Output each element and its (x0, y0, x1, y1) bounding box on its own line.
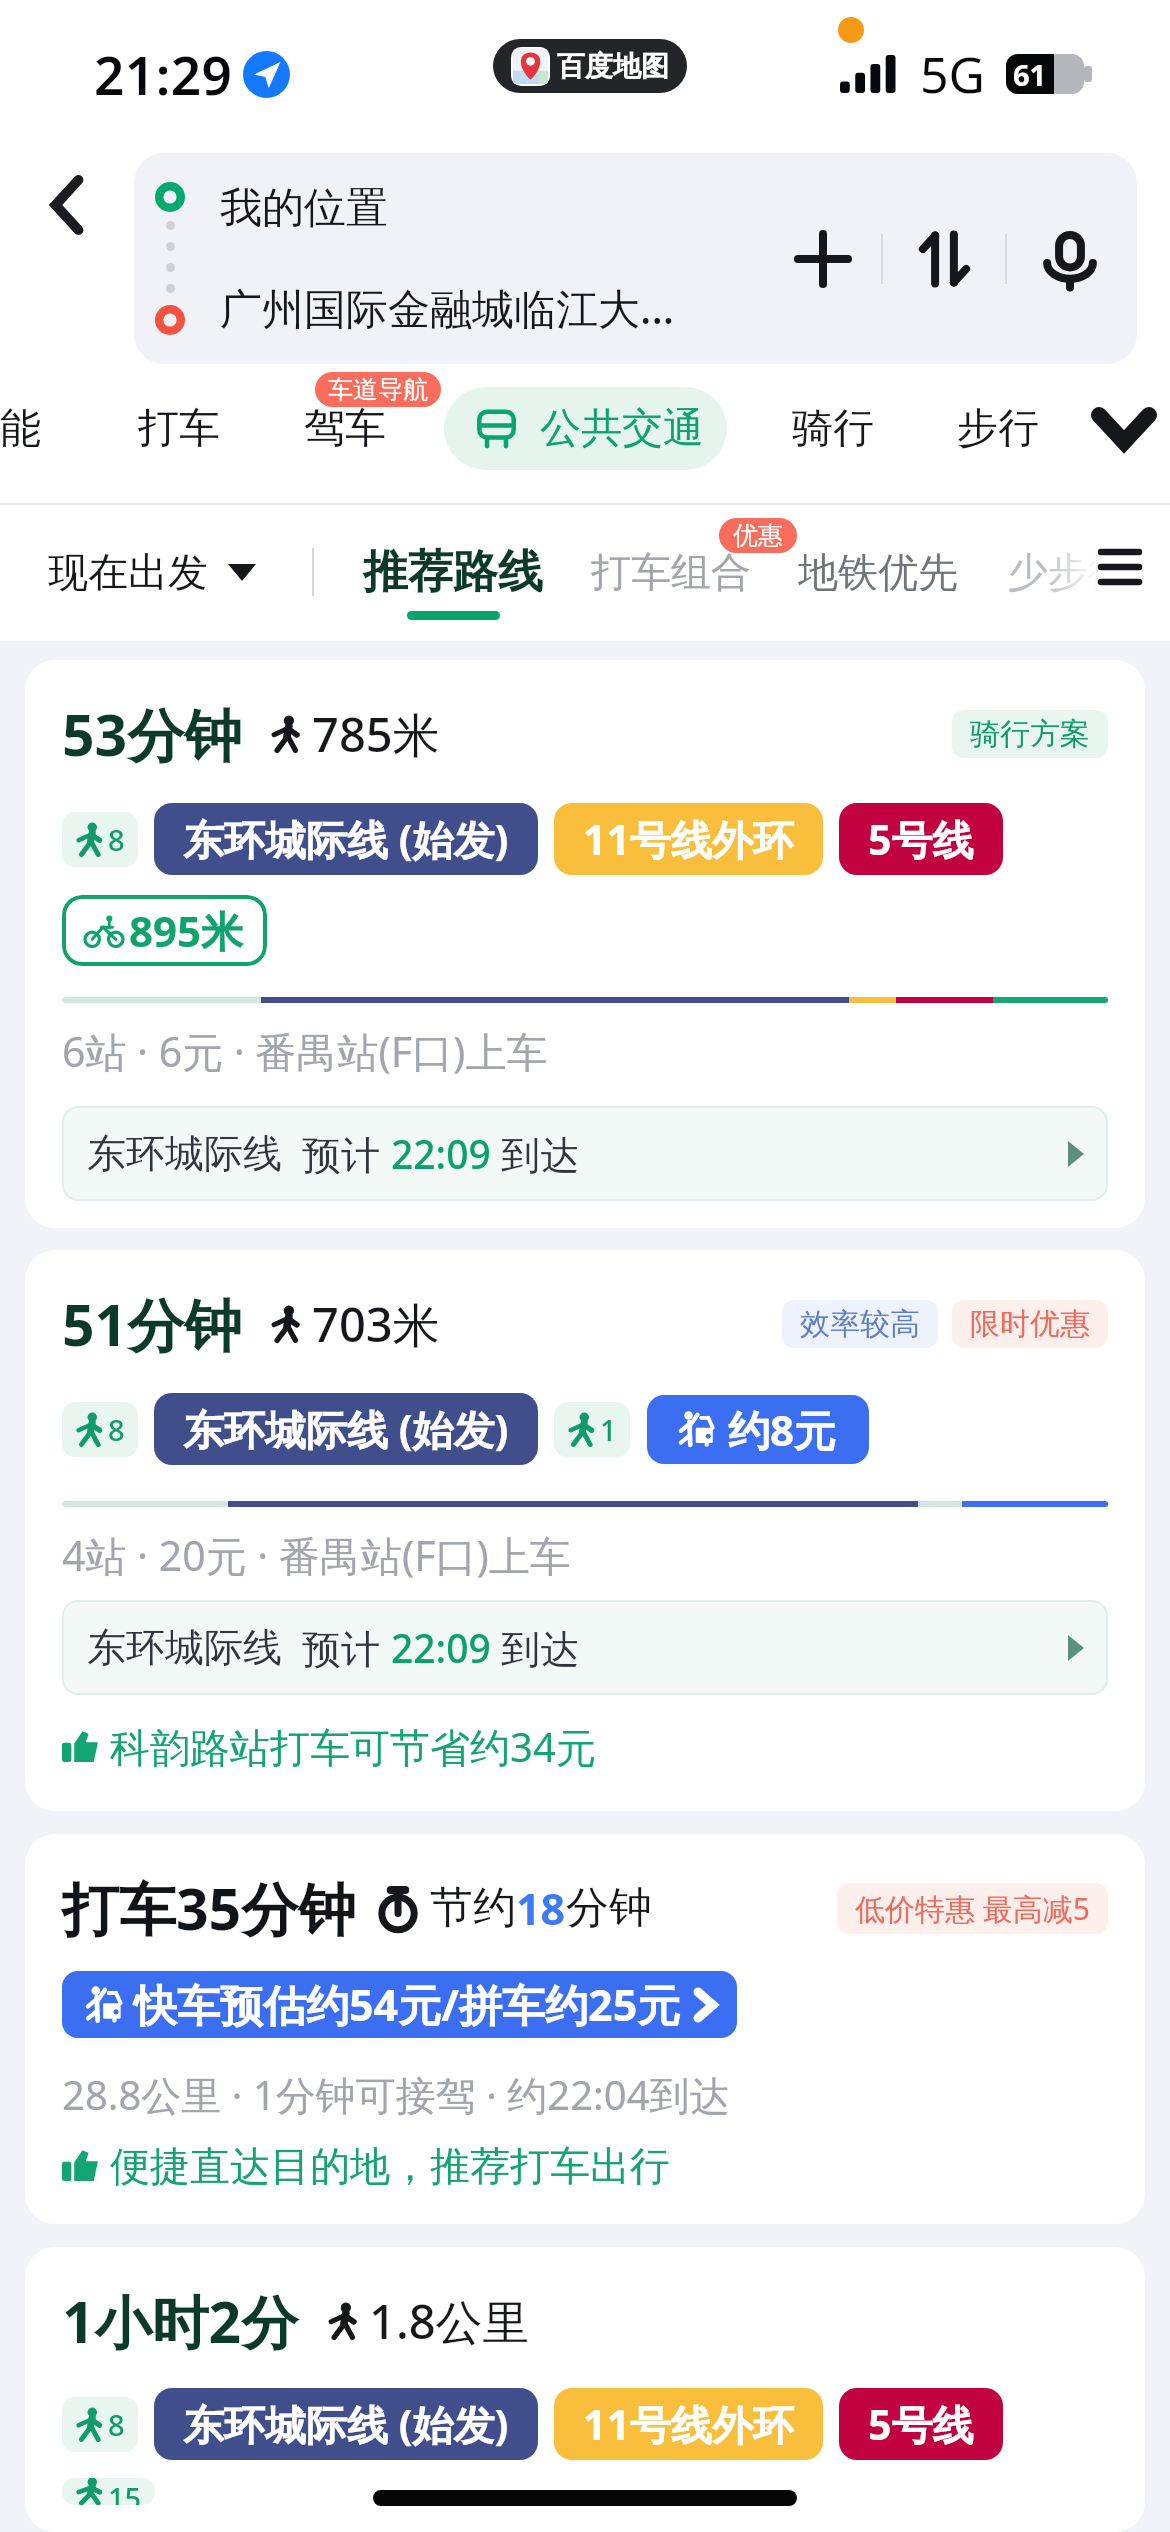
staticText: 703米 (312, 1292, 440, 1356)
button[interactable]: 步行 (957, 387, 1039, 470)
staticText: 骑行方案 (970, 715, 1090, 753)
staticText: 1.8公里 (369, 2289, 530, 2353)
staticText: 51分钟 (62, 1285, 242, 1363)
staticText: 4站 · 20元 · 番禺站(F口)上车 (62, 1527, 571, 1583)
staticText: 61 (1013, 55, 1047, 94)
staticText: 预计 (302, 1621, 391, 1674)
staticText: 打车35分钟 (62, 1869, 356, 1947)
button[interactable]: 打车 (138, 387, 220, 470)
staticText: 现在出发 (48, 547, 208, 597)
staticText: 5号线 (868, 811, 974, 867)
staticText: 东环城际线 (87, 1129, 282, 1178)
button[interactable]: More travel modes (1079, 387, 1169, 470)
staticText: 驾车 (304, 403, 386, 455)
staticText: 8 (108, 820, 125, 859)
button[interactable]: 驾车 (304, 387, 386, 470)
button[interactable]: 推荐路线 (363, 541, 543, 603)
staticText: 车道导航 (328, 374, 428, 405)
staticText: 28.8公里 · 1分钟可接驾 · 约22:04到达 (62, 2067, 730, 2122)
staticText: 东环城际线 (始发) (183, 2396, 509, 2452)
staticText: 约8元 (728, 1401, 837, 1458)
staticText: 8 (108, 1410, 125, 1449)
staticText: 东环城际线 (始发) (183, 811, 509, 867)
button[interactable]: 东环城际线 (62, 1600, 1108, 1695)
button[interactable]: 我的位置 (134, 153, 1137, 364)
staticText: 效率较高 (800, 1305, 920, 1343)
staticText: 百度地图 (557, 49, 669, 84)
button[interactable]: 公共交通 (444, 387, 727, 470)
staticText: 5号线 (868, 2396, 974, 2452)
staticText: 预计 (302, 1127, 391, 1180)
staticText: 15 (108, 2478, 142, 2505)
button[interactable]: 能源 (0, 387, 62, 470)
staticText: 53分钟 (62, 695, 242, 773)
staticText: 895米 (129, 902, 244, 959)
staticText: 8 (108, 2405, 125, 2444)
button[interactable]: 地铁优先 (798, 541, 958, 603)
button[interactable]: Add waypoint (765, 153, 881, 364)
staticText: 东环城际线 (始发) (183, 1401, 509, 1457)
staticText: 785米 (312, 702, 440, 766)
button[interactable]: Voice search (1007, 153, 1133, 364)
staticText: 推荐路线 (363, 544, 543, 601)
button[interactable]: 53分钟 (25, 660, 1145, 1228)
staticText: 11号线外环 (583, 811, 794, 867)
staticText: 6站 · 6元 · 番禺站(F口)上车 (62, 1023, 548, 1079)
staticText: 打车 (138, 403, 220, 455)
staticText: 1小时2分 (62, 2282, 299, 2360)
staticText: 节约 (430, 1881, 516, 1935)
staticText: 科韵路站打车可节省约34元 (110, 1719, 596, 1774)
button[interactable]: Swap start and destination (883, 153, 1005, 364)
staticText: 22:09 (391, 1127, 491, 1180)
staticText: 21:29 (94, 38, 233, 110)
staticText: 5G (920, 40, 985, 108)
button[interactable]: 打车组合 (591, 541, 751, 603)
staticText: 打车组合 (591, 547, 751, 597)
staticText: 广州国际金融城临江大... (220, 279, 675, 336)
staticText: 公共交通 (540, 403, 704, 455)
button[interactable]: 打车35分钟 (25, 1834, 1145, 2224)
staticText: 到达 (491, 1127, 580, 1180)
staticText: 11号线外环 (583, 2396, 794, 2452)
staticText: 步行 (957, 403, 1039, 455)
button[interactable]: 51分钟 (25, 1250, 1145, 1811)
button[interactable]: 少步行 (1008, 541, 1128, 603)
button[interactable]: Back (0, 153, 134, 363)
button[interactable]: 骑行 (792, 387, 874, 470)
staticText: 分钟 (566, 1881, 652, 1935)
staticText: 便捷直达目的地，推荐打车出行 (110, 2141, 670, 2191)
staticText: 到达 (491, 1621, 580, 1674)
staticText: 限时优惠 (970, 1305, 1090, 1343)
button[interactable]: 快车预估约54元/拼车约25元 (62, 1971, 737, 2038)
staticText: 骑行 (792, 403, 874, 455)
staticText: 1 (600, 1410, 617, 1449)
staticText: 能源 (0, 403, 62, 455)
staticText: 18 (516, 1879, 566, 1938)
staticText: 地铁优先 (798, 547, 958, 597)
staticText: 少步行 (1008, 547, 1128, 597)
staticText: 优惠 (733, 520, 783, 551)
staticText: 低价特惠 最高减5 (855, 1888, 1090, 1929)
staticText: 快车预估约54元/拼车约25元 (134, 1975, 681, 2034)
button[interactable]: 1小时2分 (25, 2247, 1145, 2532)
button[interactable]: Filter options (1070, 520, 1170, 614)
staticText: 东环城际线 (87, 1623, 282, 1672)
staticText: 我的位置 (220, 182, 388, 235)
staticText: 22:09 (391, 1621, 491, 1674)
button[interactable]: 现在出发 (48, 541, 256, 603)
button[interactable]: 东环城际线 (62, 1106, 1108, 1201)
